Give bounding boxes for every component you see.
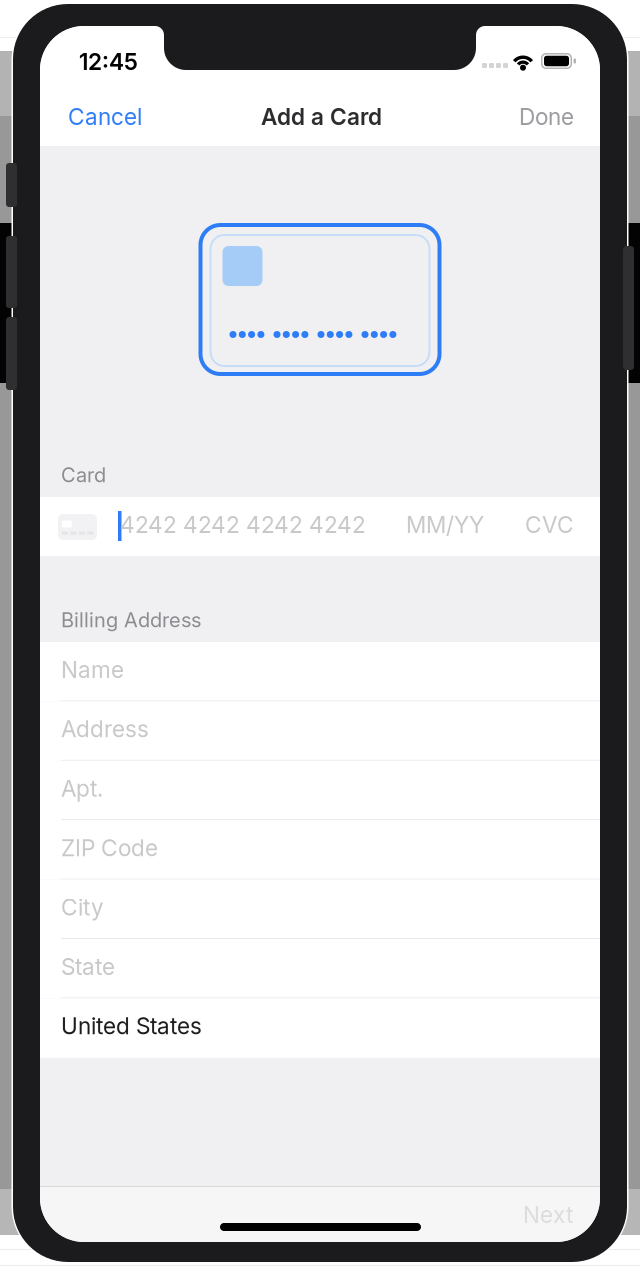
staticText: Card [61,463,106,487]
staticText: Add a Card [261,103,382,130]
button[interactable]: 4242 4242 4242 4242 [40,497,600,556]
button[interactable]: ZIP Code [40,820,600,880]
button[interactable]: Next [507,1189,589,1240]
button[interactable]: City [40,880,600,939]
button[interactable]: Done [505,88,588,145]
staticText: ZIP Code [61,834,158,862]
staticText: City [61,894,104,921]
button[interactable]: Cancel [54,88,156,145]
staticText: State [61,953,115,980]
staticText: MM/YY [406,511,484,538]
staticText: Name [61,656,124,683]
staticText: Apt. [61,775,103,802]
staticText: Cancel [68,103,142,130]
button[interactable]: State [40,939,600,998]
button[interactable]: Apt. [40,761,600,820]
staticText: Next [523,1201,573,1228]
staticText: CVC [525,511,574,538]
staticText: Done [519,103,574,130]
staticText: 4242 4242 4242 4242 [120,511,366,538]
staticText: Billing Address [61,608,201,632]
staticText: Address [61,715,149,743]
button[interactable]: United States [40,998,600,1058]
button[interactable]: Address [40,701,600,761]
button[interactable]: Add a Card [251,88,392,145]
staticText: 12:45 [79,48,138,75]
button[interactable]: Name [40,642,600,701]
staticText: United States [61,1012,202,1040]
